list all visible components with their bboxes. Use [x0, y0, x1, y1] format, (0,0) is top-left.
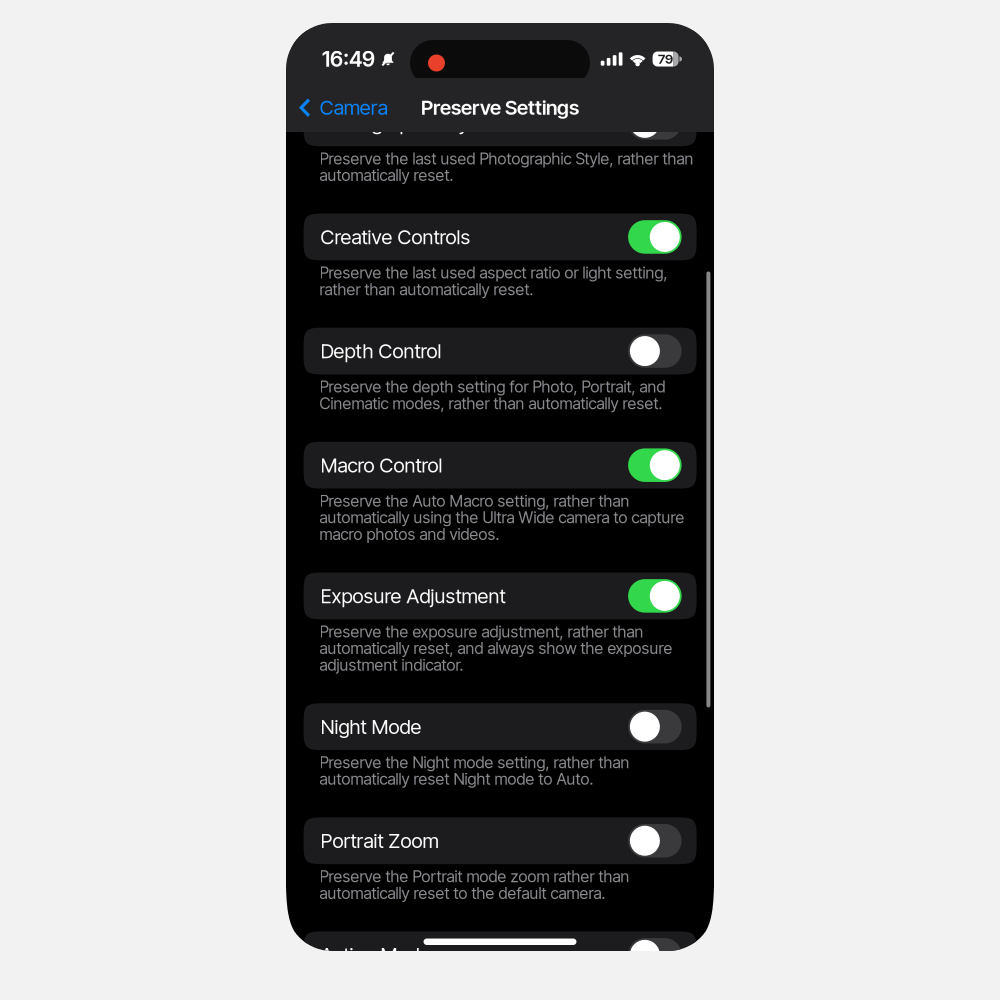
button[interactable]: Portrait Zoom — [304, 817, 697, 864]
staticText: Preserve the depth setting for Photo, Po… — [320, 378, 666, 412]
button[interactable]: Photographic Style — [304, 99, 697, 146]
button[interactable]: Depth Control — [304, 328, 697, 374]
staticText: 16:49 — [322, 46, 375, 72]
staticText: Portrait Zoom — [321, 829, 439, 853]
staticText: Camera — [320, 95, 388, 120]
staticText: 79 — [658, 51, 673, 67]
button[interactable]: Creative Controls — [304, 214, 697, 260]
staticText: Preserve the last used aspect ratio or l… — [320, 264, 668, 298]
button[interactable]: Camera — [286, 87, 398, 128]
staticText: Preserve the Auto Macro setting, rather … — [320, 493, 685, 542]
staticText: Creative Controls — [321, 225, 471, 249]
staticText: Preserve the last used Photographic Styl… — [320, 150, 694, 184]
staticText: Preserve the Night mode setting, rather … — [320, 754, 630, 787]
staticText: Action Mode — [321, 943, 431, 967]
button[interactable]: Action Mode — [304, 931, 697, 978]
staticText: Preserve the exposure adjustment, rather… — [320, 623, 673, 673]
staticText: Night Mode — [321, 714, 422, 739]
button[interactable]: Exposure Adjustment — [304, 572, 697, 619]
staticText: Preserve Settings — [421, 95, 579, 120]
staticText: Photographic Style — [321, 111, 484, 135]
staticText: Depth Control — [321, 339, 442, 363]
staticText: Preserve the Portrait mode zoom rather t… — [320, 868, 630, 901]
button[interactable]: Macro Control — [304, 442, 697, 489]
staticText: Macro Control — [321, 453, 443, 477]
button[interactable]: Night Mode — [304, 703, 697, 750]
staticText: Exposure Adjustment — [321, 584, 506, 608]
